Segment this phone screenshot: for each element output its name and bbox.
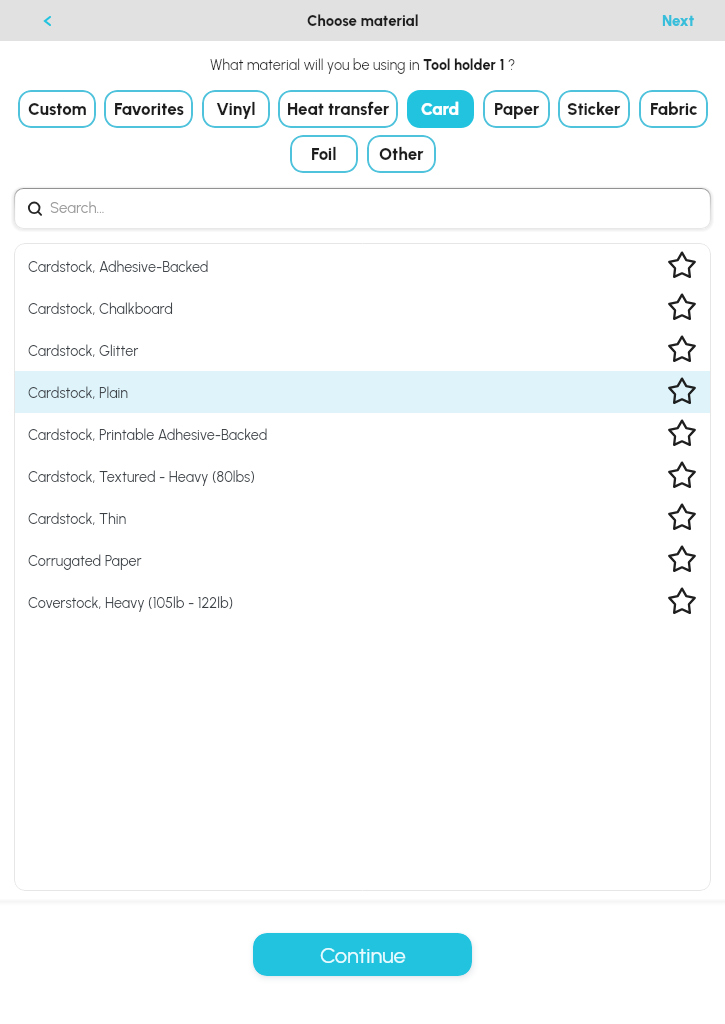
- button[interactable]: Cardstock, Glitter: [14, 329, 711, 371]
- button[interactable]: Card: [407, 90, 474, 128]
- staticText: Cardstock, Plain: [28, 384, 128, 401]
- staticText: Coverstock, Heavy (105lb - 122lb): [28, 594, 234, 611]
- button[interactable]: Cardstock, Chalkboard: [14, 287, 711, 329]
- button[interactable]: Cardstock, Plain: [14, 371, 711, 413]
- button[interactable]: Favorite: [667, 335, 697, 365]
- staticText: Custom: [28, 99, 87, 119]
- button[interactable]: Back: [29, 3, 65, 39]
- button[interactable]: Search...: [14, 188, 711, 229]
- button[interactable]: Favorites: [104, 90, 193, 128]
- button[interactable]: Cardstock, Thin: [14, 497, 711, 539]
- button[interactable]: Favorite: [667, 461, 697, 491]
- button[interactable]: Corrugated Paper: [14, 539, 711, 581]
- staticText: Vinyl: [216, 99, 256, 119]
- button[interactable]: Favorite: [667, 293, 697, 323]
- button[interactable]: Favorite: [667, 251, 697, 281]
- button[interactable]: Cardstock, Adhesive-Backed: [14, 245, 711, 287]
- button[interactable]: Other: [367, 135, 436, 173]
- staticText: Cardstock, Adhesive-Backed: [28, 258, 209, 275]
- button[interactable]: Foil: [290, 135, 358, 173]
- staticText: Heat transfer: [287, 99, 390, 119]
- staticText: Favorites: [114, 99, 184, 119]
- staticText: Choose material: [307, 12, 419, 30]
- staticText: Sticker: [567, 99, 621, 119]
- button[interactable]: Heat transfer: [278, 90, 398, 128]
- button[interactable]: Favorite: [667, 419, 697, 449]
- button[interactable]: Paper: [483, 90, 550, 128]
- button[interactable]: Custom: [18, 90, 96, 128]
- staticText: Corrugated Paper: [28, 552, 142, 569]
- staticText: Cardstock, Textured - Heavy (80lbs): [28, 468, 255, 485]
- button[interactable]: Cardstock, Printable Adhesive-Backed: [14, 413, 711, 455]
- staticText: Card: [421, 99, 460, 119]
- button[interactable]: Cardstock, Textured - Heavy (80lbs): [14, 455, 711, 497]
- staticText: Continue: [320, 942, 406, 968]
- staticText: Cardstock, Chalkboard: [28, 300, 173, 317]
- staticText: Foil: [311, 144, 337, 164]
- button[interactable]: Next: [632, 3, 725, 39]
- staticText: Cardstock, Printable Adhesive-Backed: [28, 426, 268, 443]
- staticText: Cardstock, Thin: [28, 510, 127, 527]
- staticText: Cardstock, Glitter: [28, 342, 139, 359]
- staticText: Fabric: [650, 99, 698, 119]
- button[interactable]: Favorite: [667, 587, 697, 617]
- button[interactable]: Favorite: [667, 545, 697, 575]
- button[interactable]: Continue: [253, 933, 472, 976]
- staticText: Other: [379, 144, 424, 164]
- button[interactable]: Favorite: [667, 377, 697, 407]
- button[interactable]: Favorite: [667, 503, 697, 533]
- button[interactable]: Fabric: [639, 90, 708, 128]
- staticText: Search...: [50, 199, 105, 217]
- staticText: What material will you be using in Tool …: [210, 56, 516, 73]
- button[interactable]: Vinyl: [202, 90, 270, 128]
- staticText: Next: [662, 12, 695, 30]
- staticText: Paper: [494, 99, 540, 119]
- button[interactable]: Coverstock, Heavy (105lb - 122lb): [14, 581, 711, 623]
- button[interactable]: Sticker: [558, 90, 630, 128]
